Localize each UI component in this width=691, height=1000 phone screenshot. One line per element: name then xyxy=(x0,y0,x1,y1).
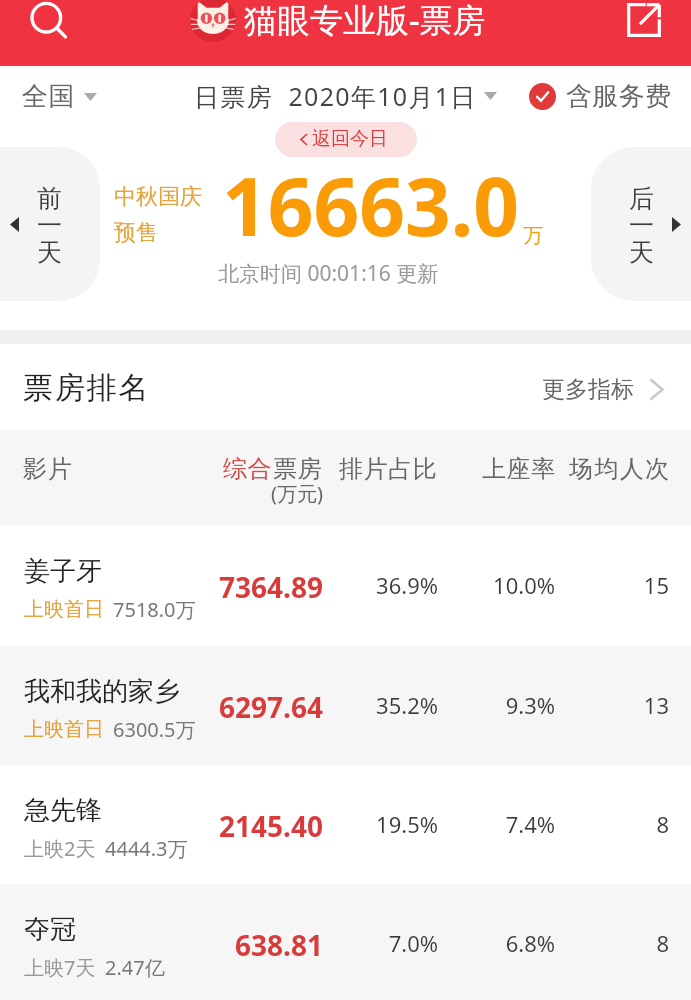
staticText: 天 xyxy=(37,237,62,268)
staticText: 13 xyxy=(469,690,669,720)
staticText: 前 xyxy=(37,183,62,214)
staticText: 9.3% xyxy=(355,690,555,720)
button[interactable]: 姜子牙 xyxy=(0,526,691,646)
staticText: 日票房 2020年10月1日 xyxy=(194,79,477,113)
button[interactable]: 急先锋 xyxy=(0,765,691,885)
staticText: 上座率 xyxy=(482,454,556,484)
button[interactable]: 后一天 xyxy=(591,147,691,301)
button[interactable]: Search xyxy=(26,0,70,42)
staticText: 2145.40 xyxy=(123,807,323,845)
staticText: 中秋国庆 xyxy=(114,183,202,211)
staticText: 上映首日 xyxy=(24,717,104,742)
staticText: 含服务费 xyxy=(566,80,672,113)
staticText: 票房排名 xyxy=(23,369,151,407)
staticText: 上映首日 xyxy=(24,597,104,622)
staticText: 我和我的家乡 xyxy=(24,675,180,708)
staticText: 场均人次 xyxy=(569,454,671,484)
staticText: 2.47亿 xyxy=(105,954,165,981)
staticText: 后 xyxy=(629,183,654,214)
button[interactable]: 夺冠 xyxy=(0,884,691,1000)
staticText: 7364.89 xyxy=(123,568,323,606)
staticText: 6297.64 xyxy=(123,688,323,726)
staticText: 猫眼专业版-票房 xyxy=(244,0,486,42)
staticText: 7.0% xyxy=(238,928,438,958)
staticText: 预售 xyxy=(114,219,158,247)
staticText: 夺冠 xyxy=(24,913,76,946)
staticText: 姜子牙 xyxy=(24,555,102,588)
staticText: (万元) xyxy=(271,480,323,507)
button[interactable]: Share xyxy=(622,0,666,42)
button[interactable]: 返回今日 xyxy=(275,122,417,157)
staticText: 票房 xyxy=(273,454,323,484)
staticText: 上映2天 xyxy=(24,835,96,862)
staticText: 8 xyxy=(469,928,669,958)
button[interactable]: 我和我的家乡 xyxy=(0,646,691,766)
button[interactable]: 含服务费 xyxy=(523,74,678,119)
staticText: 36.9% xyxy=(238,570,438,600)
staticText: 4444.3万 xyxy=(105,835,188,862)
staticText: 8 xyxy=(469,809,669,839)
button[interactable]: 全国 xyxy=(14,74,104,119)
staticText: 急先锋 xyxy=(24,794,102,827)
staticText: 影片 xyxy=(23,454,73,484)
staticText: 一 xyxy=(37,210,62,241)
staticText: 上映7天 xyxy=(24,954,96,981)
staticText: 16663.0 xyxy=(222,150,520,259)
staticText: 综合 xyxy=(223,454,273,484)
staticText: 15 xyxy=(469,570,669,600)
staticText: 35.2% xyxy=(238,690,438,720)
staticText: 6300.5万 xyxy=(113,716,196,743)
staticText: 7518.0万 xyxy=(113,596,196,623)
staticText: 一 xyxy=(629,210,654,241)
staticText: 19.5% xyxy=(238,809,438,839)
staticText: 638.81 xyxy=(123,926,323,964)
staticText: 北京时间 00:01:16 更新 xyxy=(218,259,439,288)
button[interactable]: 日票房 2020年10月1日 xyxy=(187,73,504,119)
staticText: 更多指标 xyxy=(542,375,634,404)
staticText: 排片占比 xyxy=(339,454,438,484)
staticText: 7.4% xyxy=(355,809,555,839)
staticText: 全国 xyxy=(21,80,75,113)
staticText: 万 xyxy=(523,223,543,248)
button[interactable]: 前一天 xyxy=(0,147,100,301)
staticText: 6.8% xyxy=(355,928,555,958)
staticText: 天 xyxy=(629,237,654,268)
staticText: 10.0% xyxy=(355,570,555,600)
staticText: 返回今日 xyxy=(312,127,388,151)
button[interactable]: 更多指标 xyxy=(536,371,670,408)
